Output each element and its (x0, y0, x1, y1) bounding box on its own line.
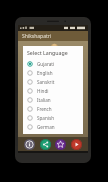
button[interactable]: Share (40, 139, 51, 150)
button[interactable]: Gujarati (27, 59, 80, 68)
button[interactable]: Italian (27, 95, 80, 104)
button[interactable]: English (27, 68, 80, 77)
button[interactable]: Favorite (55, 139, 66, 150)
staticText: Hindi (37, 88, 49, 94)
staticText: Gujarati (37, 61, 55, 67)
button[interactable]: Sanskrit (27, 77, 80, 86)
button[interactable]: Shikshapatri (18, 31, 88, 41)
staticText: German (37, 124, 55, 130)
button[interactable]: German (27, 122, 80, 131)
button[interactable]: Spanish (27, 113, 80, 122)
staticText: French (37, 106, 52, 112)
staticText: Shikshapatri (22, 33, 52, 40)
button[interactable]: Hindi (27, 86, 80, 95)
staticText: Spanish (37, 115, 54, 121)
button[interactable]: French (27, 104, 80, 113)
staticText: Sanskrit (37, 79, 55, 85)
staticText: Select Language (27, 49, 68, 56)
button[interactable]: Info (24, 139, 35, 150)
staticText: English (37, 70, 53, 76)
staticText: Italian (37, 97, 51, 103)
button[interactable]: Play (71, 139, 82, 150)
